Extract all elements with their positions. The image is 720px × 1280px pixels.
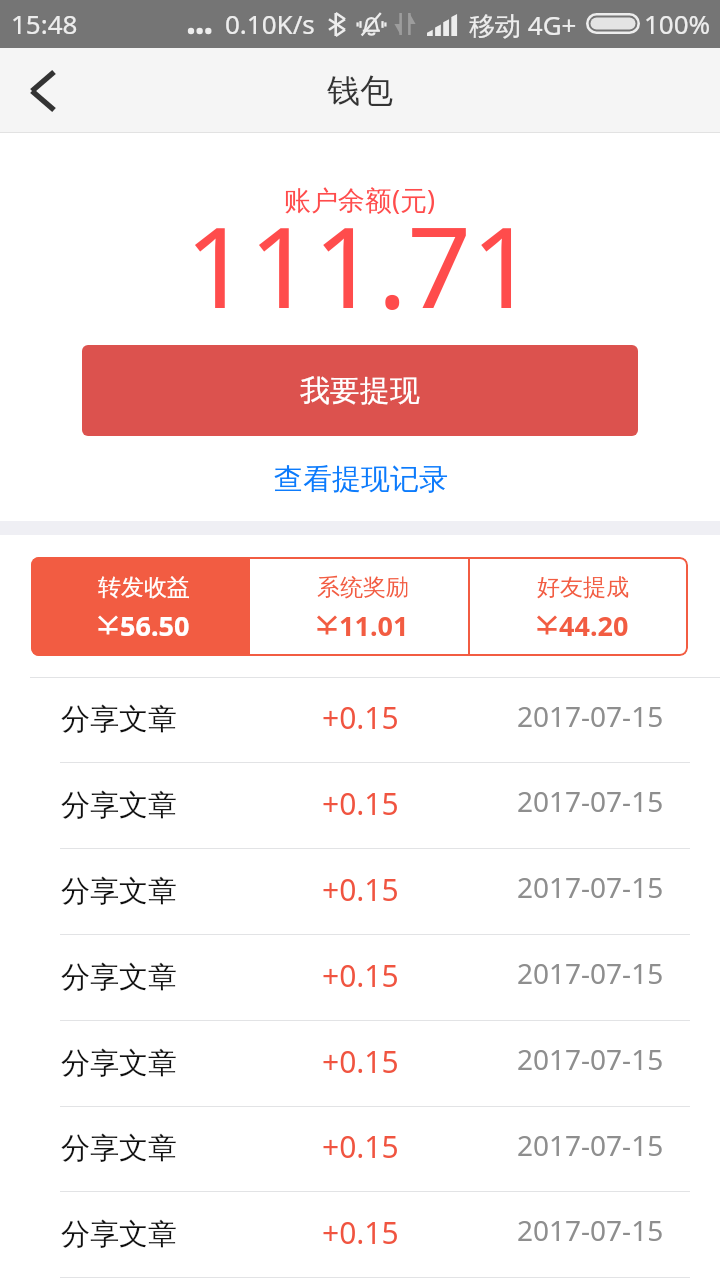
button[interactable]: 分享文章 (0, 677, 720, 762)
staticText: 查看提现记录 (274, 461, 448, 498)
button[interactable]: 系统奖励 (250, 557, 468, 656)
staticText: +0.15 (322, 783, 399, 824)
staticText: 15:48 (11, 6, 78, 41)
button[interactable]: 查看提现记录 (266, 457, 456, 502)
button[interactable]: 分享文章 (0, 762, 720, 848)
staticText: 2017-07-15 (517, 1126, 664, 1164)
staticText: 账户余额(元) (284, 181, 436, 218)
staticText: 11.01 (339, 607, 409, 644)
staticText: 56.50 (120, 607, 190, 644)
staticText: 移动 4G+ (469, 7, 577, 43)
button[interactable]: Back (0, 49, 84, 133)
staticText: +0.15 (322, 697, 399, 738)
staticText: +0.15 (322, 1041, 399, 1082)
staticText: 钱包 (327, 70, 393, 112)
staticText: 分享文章 (61, 1216, 177, 1253)
staticText: 2017-07-15 (517, 782, 664, 820)
button[interactable]: 分享文章 (0, 1191, 720, 1277)
staticText: 100% (644, 6, 711, 41)
staticText: +0.15 (322, 1126, 399, 1167)
staticText: 2017-07-15 (517, 954, 664, 992)
staticText: 2017-07-15 (517, 697, 664, 735)
button[interactable]: 分享文章 (0, 1020, 720, 1106)
staticText: 系统奖励 (317, 573, 409, 602)
button[interactable]: 分享文章 (0, 1277, 720, 1280)
button[interactable]: 我要提现 (82, 345, 638, 436)
staticText: 111.71 (185, 188, 536, 341)
staticText: 0.10K/s (225, 6, 315, 41)
staticText: +0.15 (322, 955, 399, 996)
button[interactable]: 分享文章 (0, 848, 720, 934)
staticText: +0.15 (322, 869, 399, 910)
button[interactable]: 好友提成 (470, 557, 688, 656)
button[interactable]: 分享文章 (0, 1106, 720, 1191)
staticText: 分享文章 (61, 787, 177, 824)
staticText: 分享文章 (61, 959, 177, 996)
button[interactable]: 分享文章 (0, 934, 720, 1020)
staticText: 44.20 (559, 607, 629, 644)
staticText: 分享文章 (61, 1045, 177, 1082)
staticText: 2017-07-15 (517, 1040, 664, 1078)
staticText: 2017-07-15 (517, 1211, 664, 1249)
button[interactable]: 转发收益 (31, 557, 248, 656)
staticText: 我要提现 (300, 372, 420, 410)
staticText: 2017-07-15 (517, 868, 664, 906)
staticText: 转发收益 (98, 573, 190, 602)
staticText: 分享文章 (61, 1130, 177, 1167)
staticText: 好友提成 (537, 573, 629, 602)
staticText: 分享文章 (61, 701, 177, 738)
staticText: +0.15 (322, 1212, 399, 1253)
staticText: 分享文章 (61, 873, 177, 910)
